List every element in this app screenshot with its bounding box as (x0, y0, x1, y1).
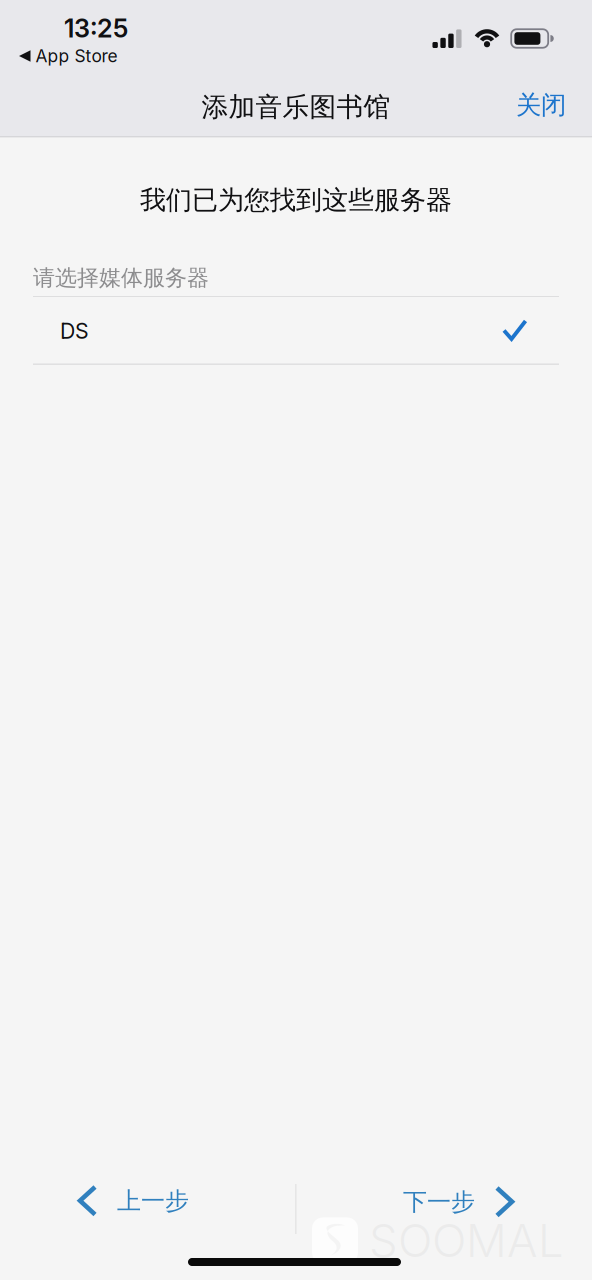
staticText: 关闭 (516, 89, 566, 121)
staticText: DS (60, 318, 89, 344)
staticText: 我们已为您找到这些服务器 (140, 184, 452, 216)
button[interactable]: DS (0, 297, 592, 364)
staticText: 请选择媒体服务器 (33, 264, 209, 292)
button[interactable]: 上一步 (53, 1172, 213, 1230)
button[interactable]: 下一步 (379, 1173, 539, 1231)
staticText: 下一步 (403, 1187, 475, 1217)
staticText: SOOMAL (369, 1213, 564, 1268)
staticText: 13:25 (64, 13, 128, 44)
button[interactable]: 关闭 (489, 86, 592, 124)
staticText: 上一步 (117, 1186, 189, 1216)
button[interactable]: Back to App Store (19, 45, 117, 67)
staticText: 添加音乐图书馆 (201, 90, 390, 124)
staticText: App Store (35, 45, 117, 66)
